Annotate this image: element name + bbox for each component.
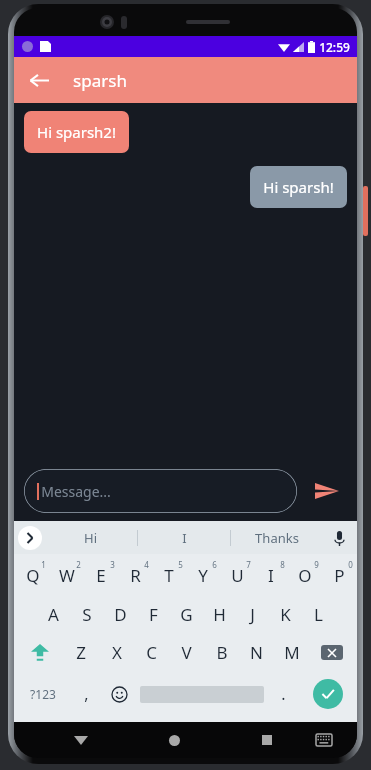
staticText: T (164, 564, 174, 587)
button[interactable]: Home (157, 723, 191, 757)
button[interactable]: U (220, 554, 254, 596)
staticText: N (250, 641, 263, 664)
staticText: D (114, 603, 127, 626)
button[interactable]: V (169, 632, 204, 672)
button[interactable]: Message... (24, 469, 297, 513)
staticText: Y (198, 564, 208, 587)
button[interactable]: G (170, 596, 203, 632)
button[interactable]: L (302, 596, 335, 632)
staticText: C (146, 641, 157, 664)
staticText: Z (76, 641, 86, 664)
button[interactable]: S (70, 596, 104, 632)
staticText: 9 (314, 559, 319, 570)
button[interactable]: Shift (16, 632, 63, 672)
button[interactable]: B (204, 632, 239, 672)
staticText: W (59, 564, 75, 587)
button[interactable]: Q (15, 554, 50, 596)
staticText: E (96, 564, 106, 587)
button[interactable]: Backspace (309, 632, 355, 672)
staticText: F (149, 603, 158, 626)
button[interactable]: I (254, 554, 288, 596)
button[interactable]: Switch keyboard (307, 723, 341, 757)
button[interactable]: Voice input (327, 526, 351, 550)
button[interactable]: W (50, 554, 84, 596)
staticText: S (82, 603, 92, 626)
staticText: Message... (41, 482, 111, 501)
button[interactable]: D (104, 596, 137, 632)
button[interactable]: Send (307, 471, 347, 511)
staticText: X (112, 641, 122, 664)
staticText: 4 (144, 559, 149, 570)
staticText: 2 (76, 559, 81, 570)
staticText: sparsh (73, 69, 127, 92)
staticText: 0 (348, 559, 353, 570)
button[interactable]: K (269, 596, 302, 632)
button[interactable]: Thanks (231, 521, 323, 554)
button[interactable]: N (239, 632, 274, 672)
staticText: I (268, 564, 274, 587)
button[interactable]: C (134, 632, 169, 672)
button[interactable]: H (203, 596, 236, 632)
staticText: Q (26, 564, 40, 587)
button[interactable]: Back (22, 63, 56, 97)
button[interactable]: . (267, 672, 300, 716)
staticText: O (298, 564, 312, 587)
button[interactable]: , (70, 672, 103, 716)
button[interactable]: I (138, 521, 230, 554)
staticText: Thanks (255, 529, 299, 547)
staticText: M (284, 641, 300, 664)
staticText: K (280, 603, 291, 626)
button[interactable]: M (274, 632, 309, 672)
staticText: 3 (110, 559, 115, 570)
staticText: B (216, 641, 228, 664)
staticText: I (182, 529, 187, 547)
staticText: Hi sparsh! (263, 177, 334, 197)
staticText: H (213, 603, 226, 626)
button[interactable]: F (137, 596, 170, 632)
button[interactable]: R (118, 554, 152, 596)
staticText: 1 (41, 559, 46, 570)
staticText: ?123 (30, 686, 56, 702)
button[interactable]: A (36, 596, 70, 632)
staticText: P (334, 564, 345, 587)
button[interactable]: Hi sparsh! (250, 166, 347, 208)
staticText: G (180, 603, 193, 626)
button[interactable]: P (322, 554, 356, 596)
staticText: 7 (246, 559, 251, 570)
staticText: Hi (84, 529, 97, 547)
button[interactable]: Recents (250, 723, 284, 757)
button[interactable]: O (288, 554, 322, 596)
button[interactable]: J (236, 596, 269, 632)
staticText: 12:59 (319, 39, 350, 55)
staticText: L (314, 603, 323, 626)
other: Power (363, 186, 368, 236)
button[interactable]: X (99, 632, 134, 672)
button[interactable]: Enter (300, 672, 355, 716)
staticText: J (250, 603, 255, 626)
staticText: R (130, 564, 141, 587)
button[interactable]: E (84, 554, 118, 596)
button[interactable]: T (152, 554, 186, 596)
staticText: 5 (178, 559, 183, 570)
button[interactable]: Emoji (103, 672, 136, 716)
staticText: , (84, 683, 89, 705)
button[interactable]: Hi sparsh2! (24, 111, 129, 153)
staticText: U (231, 564, 244, 587)
button[interactable]: Back (64, 723, 98, 757)
button[interactable]: ?123 (16, 672, 70, 716)
staticText: V (181, 641, 192, 664)
staticText: . (281, 683, 286, 705)
staticText: A (48, 603, 59, 626)
staticText: 6 (212, 559, 217, 570)
button[interactable] (136, 672, 267, 716)
staticText: 8 (280, 559, 285, 570)
button[interactable]: Expand suggestions (18, 526, 42, 550)
button[interactable]: Z (63, 632, 99, 672)
button[interactable]: Y (186, 554, 220, 596)
button[interactable]: Hi (44, 521, 137, 554)
staticText: Hi sparsh2! (37, 122, 116, 142)
